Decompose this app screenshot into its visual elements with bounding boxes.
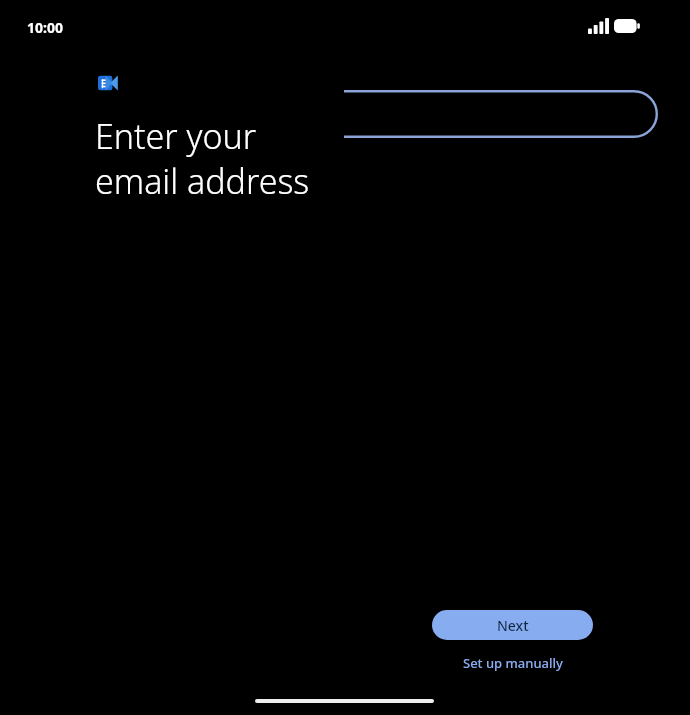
button[interactable]: Set up manually — [432, 650, 593, 676]
staticText: Next — [497, 616, 529, 635]
button[interactable]: Email address — [344, 90, 658, 138]
staticText: 10:00 — [27, 18, 63, 37]
other: Exchange — [98, 74, 118, 92]
staticText: Set up manually — [463, 654, 563, 672]
staticText: Enter your email address — [95, 113, 310, 203]
button[interactable]: Next — [432, 610, 593, 640]
